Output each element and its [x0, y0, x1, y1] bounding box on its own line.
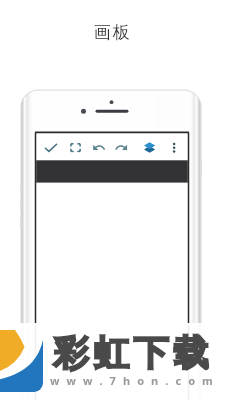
staticText: 画板 [0, 22, 225, 43]
button[interactable]: Done [36, 134, 58, 159]
staticText: 彩虹下载 [51, 331, 211, 375]
staticText: w w w . 7 h o n . c o m [50, 373, 215, 388]
button[interactable]: Undo [92, 134, 114, 159]
button[interactable]: More options [177, 134, 188, 159]
staticText: 彩虹下载 [51, 331, 211, 375]
button[interactable]: Layers [139, 134, 161, 159]
button[interactable]: Fit to screen [58, 134, 80, 159]
button[interactable]: Redo [114, 134, 136, 159]
